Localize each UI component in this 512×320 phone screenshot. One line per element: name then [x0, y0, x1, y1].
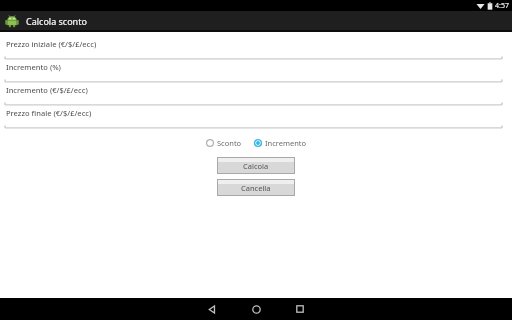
- button[interactable]: [0, 96, 512, 106]
- button[interactable]: Back: [190, 298, 234, 320]
- staticText: Prezzo finale (€/$/£/ecc): [6, 108, 92, 118]
- button[interactable]: [0, 50, 512, 60]
- button[interactable]: [0, 73, 512, 83]
- staticText: Incremento (%): [6, 62, 61, 72]
- staticText: Calcola sconto: [26, 15, 87, 27]
- button[interactable]: [0, 119, 512, 129]
- staticText: Calcola: [243, 161, 269, 171]
- staticText: Incremento: [265, 138, 307, 148]
- staticText: Cancella: [241, 183, 271, 193]
- button[interactable]: Incremento: [253, 137, 308, 149]
- staticText: 4:57: [495, 1, 509, 11]
- staticText: Prezzo iniziale (€/$/£/ecc): [6, 39, 97, 49]
- button[interactable]: Calcola: [217, 157, 295, 174]
- button[interactable]: Recent apps: [278, 298, 322, 320]
- button[interactable]: Home: [234, 298, 278, 320]
- staticText: Incremento (€/$/£/ecc): [6, 85, 88, 95]
- button[interactable]: Cancella: [217, 179, 295, 196]
- button[interactable]: Sconto: [205, 137, 243, 149]
- staticText: Sconto: [217, 138, 242, 148]
